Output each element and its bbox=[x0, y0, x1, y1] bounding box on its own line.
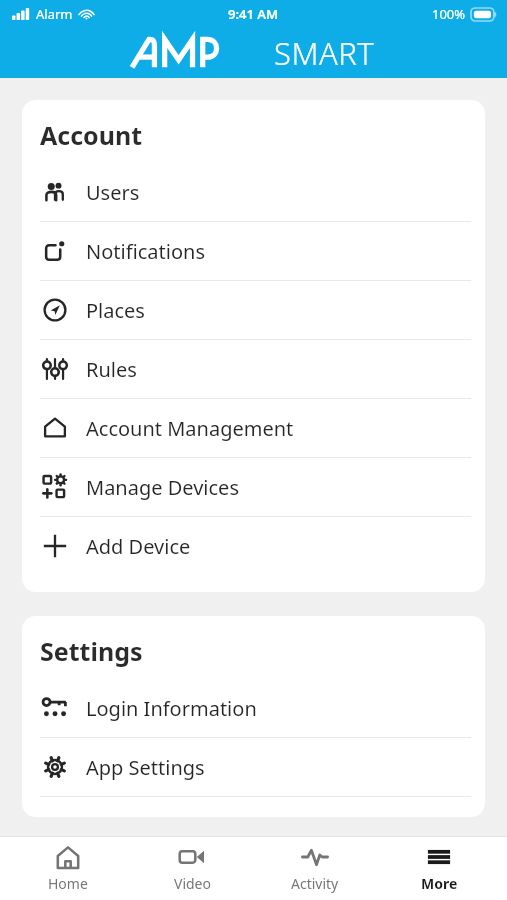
staticText: Users bbox=[86, 179, 140, 206]
staticText: Notifications bbox=[86, 238, 205, 265]
staticText: SMART bbox=[274, 32, 375, 74]
staticText: Rules bbox=[86, 356, 137, 383]
staticText: 100% bbox=[432, 5, 466, 23]
staticText: Account bbox=[40, 118, 143, 152]
staticText: Video bbox=[174, 874, 211, 893]
button[interactable]: Add Device bbox=[22, 517, 485, 575]
button[interactable]: Places bbox=[22, 281, 485, 339]
button[interactable]: Video bbox=[137, 837, 247, 900]
staticText: Add Device bbox=[86, 533, 191, 560]
staticText: App Settings bbox=[86, 754, 205, 781]
button[interactable]: Notifications bbox=[22, 222, 485, 280]
staticText: Manage Devices bbox=[86, 474, 239, 501]
button[interactable]: Login Information bbox=[22, 679, 485, 737]
staticText: Alarm bbox=[36, 5, 73, 23]
button[interactable]: App Settings bbox=[22, 738, 485, 796]
button[interactable]: Manage Devices bbox=[22, 458, 485, 516]
staticText: Settings bbox=[40, 634, 143, 668]
staticText: 9:41 AM bbox=[228, 5, 279, 23]
staticText: Activity bbox=[291, 874, 339, 893]
staticText: More bbox=[421, 874, 458, 893]
button[interactable]: Users bbox=[22, 163, 485, 221]
button[interactable]: Home bbox=[13, 837, 123, 900]
staticText: Account Management bbox=[86, 415, 294, 442]
staticText: Home bbox=[48, 874, 88, 893]
staticText: Places bbox=[86, 297, 145, 324]
button[interactable]: Account Management bbox=[22, 399, 485, 457]
staticText: Login Information bbox=[86, 695, 257, 722]
button[interactable]: Activity bbox=[260, 837, 370, 900]
button[interactable]: Rules bbox=[22, 340, 485, 398]
button[interactable]: More bbox=[384, 837, 494, 900]
